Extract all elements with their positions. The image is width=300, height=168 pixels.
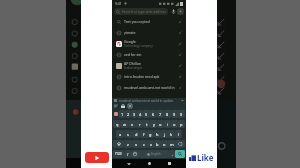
staticText: 7 [159,112,162,117]
button[interactable]: AP Dhillon [115,60,183,71]
button[interactable]: 7 [157,110,164,118]
staticText: l [178,132,180,137]
staticText: o [173,122,176,127]
button[interactable]: y [150,120,157,128]
staticText: f [143,132,145,137]
button[interactable]: Back [124,159,133,168]
staticText: / [127,152,129,157]
button[interactable]: w [121,120,129,128]
button[interactable]: e [129,120,136,128]
staticText: Like [197,152,214,163]
staticText: AP Dhillon [124,61,141,66]
button[interactable]: u [157,120,164,128]
button[interactable]: / [124,150,131,158]
staticText: y [153,122,155,127]
button[interactable]: h [154,130,161,138]
staticText: n [163,142,166,147]
button[interactable]: p [178,120,185,128]
button[interactable]: a [116,130,124,138]
staticText: 9 [173,112,176,117]
staticText: English [151,152,161,156]
button[interactable]: 4 [137,110,143,118]
button[interactable]: YouTube [85,152,109,163]
staticText: Google [124,39,136,44]
button[interactable]: c [140,140,147,148]
button[interactable]: 1 [119,110,125,118]
staticText: 2 [127,112,130,117]
staticText: w [123,122,127,127]
button[interactable]: b [154,140,161,148]
button[interactable]: j [161,130,168,138]
button[interactable]: x [132,140,140,148]
button[interactable]: l [175,130,182,138]
staticText: m [170,142,174,147]
button[interactable]: v [147,140,154,148]
button[interactable]: q [113,120,121,128]
staticText: i [167,122,169,127]
staticText: j [164,132,166,137]
button[interactable]: 0 [178,110,185,118]
button[interactable]: m [168,140,175,148]
button[interactable]: Scan QR [177,8,184,15]
button[interactable]: 3 [131,110,137,118]
button[interactable]: g [147,130,154,138]
button[interactable]: ved for ein [115,49,183,60]
button[interactable]: r [136,120,143,128]
staticText: b [156,142,159,147]
button[interactable]: t [143,120,150,128]
staticText: d [135,132,138,137]
button[interactable]: . [169,150,175,158]
staticText: Technology company [124,44,153,48]
button[interactable]: z [124,140,132,148]
button[interactable]: f [140,130,147,138]
button[interactable]: 5 [143,110,150,118]
button[interactable]: Voice search [170,8,177,15]
staticText: r [139,122,141,127]
button[interactable]: 9 [171,110,178,118]
button[interactable]: English [139,150,169,158]
staticText: p [180,122,183,127]
staticText: ved for ein [124,52,142,57]
staticText: 6 [152,112,155,117]
staticText: x [135,142,138,147]
staticText: k [170,132,173,137]
button[interactable]: Search [175,150,185,158]
button[interactable]: ?123 [113,150,124,158]
button[interactable]: Search or type web address [116,8,166,15]
button[interactable]: Google [115,38,183,49]
staticText: 0 [180,112,183,117]
staticText: e [131,122,134,127]
staticText: Indian singer [124,66,142,70]
button[interactable]: ytmate [115,27,183,38]
button[interactable]: i [164,120,171,128]
button[interactable]: s [124,130,132,138]
staticText: 5 [145,112,148,117]
button[interactable]: k [168,130,175,138]
button[interactable]: 6 [150,110,157,118]
button[interactable]: Home [145,159,154,168]
staticText: t [146,122,148,127]
staticText: v [150,142,152,147]
button[interactable]: mudevel.ambuent.net world in update [115,82,183,93]
button[interactable]: Recents [165,159,174,168]
button[interactable]: Clipboard [114,112,118,116]
button[interactable] [131,150,139,158]
button[interactable]: Keyboard settings [114,104,118,108]
staticText: z [127,142,129,147]
button[interactable]: n [161,140,168,148]
staticText: 1 [121,112,124,117]
button[interactable]: d [132,130,140,138]
button[interactable]: intro.fnudev mod apk [115,71,183,82]
button[interactable]: Like [189,152,214,163]
button[interactable]: Text you copied [115,16,183,27]
staticText: Text you copied [124,19,150,24]
button[interactable] [113,140,124,148]
staticText: 9:41 [115,1,122,6]
button[interactable] [175,140,185,148]
staticText: ?123 [115,152,122,156]
staticText: 8 [166,112,169,117]
button[interactable]: 8 [164,110,171,118]
button[interactable]: 2 [125,110,131,118]
button[interactable]: o [171,120,178,128]
staticText: a [119,132,122,137]
